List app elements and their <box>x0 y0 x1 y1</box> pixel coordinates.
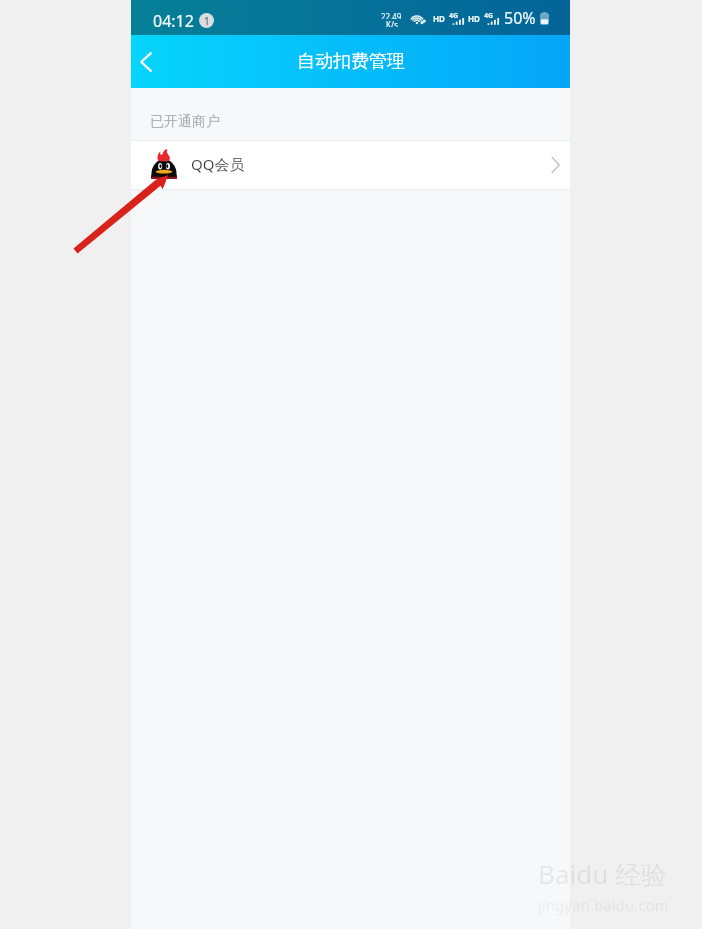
staticText: 自动扣费管理 <box>297 50 405 73</box>
staticText: HD <box>433 13 445 24</box>
button[interactable]: Back <box>131 35 161 88</box>
staticText: 50% <box>504 7 536 29</box>
staticText: HD <box>468 13 480 24</box>
staticText: 22.49 <box>381 11 402 19</box>
staticText: QQ会员 <box>191 154 245 174</box>
staticText: 1 <box>204 14 210 28</box>
staticText: 04:12 <box>153 10 194 32</box>
staticText: 已开通商户 <box>150 113 220 131</box>
button[interactable]: QQ会员 <box>131 141 570 189</box>
staticText: K/s <box>386 19 398 27</box>
staticText: 4G <box>484 11 494 21</box>
staticText: 4G <box>449 11 459 21</box>
staticText: Baidu 经验 <box>538 856 668 892</box>
staticText: jingyan.baidu.com <box>538 895 669 915</box>
